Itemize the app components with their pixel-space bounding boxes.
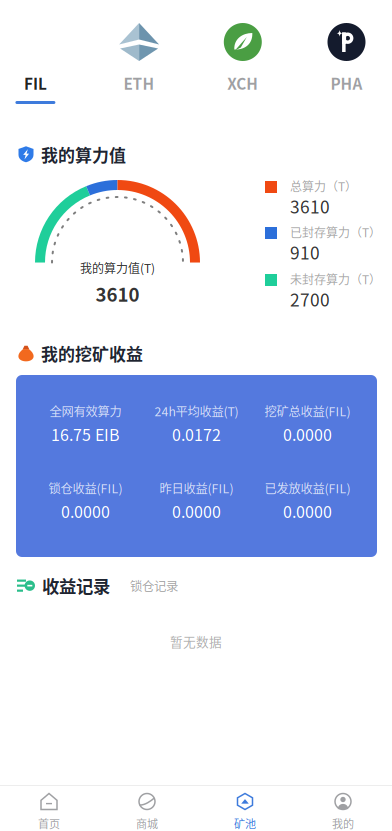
staticText: XCH [227, 72, 258, 94]
button[interactable]: 首页 [0, 785, 98, 831]
staticText: ETH [124, 72, 155, 94]
staticText: 16.75 EIB [51, 422, 120, 446]
staticText: 总算力（T） [290, 177, 357, 195]
staticText: 全网有效算力 [49, 402, 121, 420]
staticText: 矿池 [234, 815, 256, 831]
staticText: 3610 [290, 193, 330, 219]
button[interactable]: 商城 [98, 785, 196, 831]
staticText: 0.0000 [61, 499, 110, 523]
staticText: 3610 [95, 280, 139, 307]
staticText: 已封存算力（T） [290, 223, 381, 241]
staticText: 我的算力值 [41, 142, 126, 166]
staticText: 商城 [136, 815, 158, 831]
button[interactable]: ETH [119, 0, 159, 106]
staticText: 0.0000 [172, 499, 221, 523]
staticText: 首页 [38, 815, 60, 831]
staticText: 已发放收益(FIL) [264, 479, 350, 497]
staticText: 910 [290, 239, 320, 265]
staticText: FIL [24, 72, 47, 94]
button[interactable]: XCH [223, 0, 263, 106]
staticText: 锁仓记录 [130, 577, 178, 595]
button[interactable]: FIL [15, 0, 55, 106]
staticText: 0.0000 [283, 422, 332, 446]
button[interactable]: PHA [326, 0, 366, 106]
staticText: 暂无数据 [170, 632, 222, 650]
staticText: 未封存算力（T） [290, 270, 381, 288]
staticText: 0.0000 [283, 499, 332, 523]
staticText: 收益记录 [42, 573, 110, 598]
staticText: 我的算力值(T) [80, 259, 155, 276]
staticText: 24h平均收益(T) [154, 402, 238, 420]
button[interactable]: 我的 [294, 785, 392, 831]
staticText: 我的 [332, 815, 354, 831]
staticText: 昨日收益(FIL) [159, 479, 233, 497]
button[interactable]: 矿池 [196, 785, 294, 831]
staticText: 锁仓收益(FIL) [48, 479, 122, 497]
staticText: PHA [330, 72, 362, 94]
staticText: 挖矿总收益(FIL) [264, 402, 350, 420]
staticText: 0.0172 [172, 422, 221, 446]
staticText: 2700 [290, 286, 330, 312]
staticText: 我的挖矿收益 [41, 341, 143, 365]
button[interactable]: 锁仓记录 [117, 577, 178, 595]
